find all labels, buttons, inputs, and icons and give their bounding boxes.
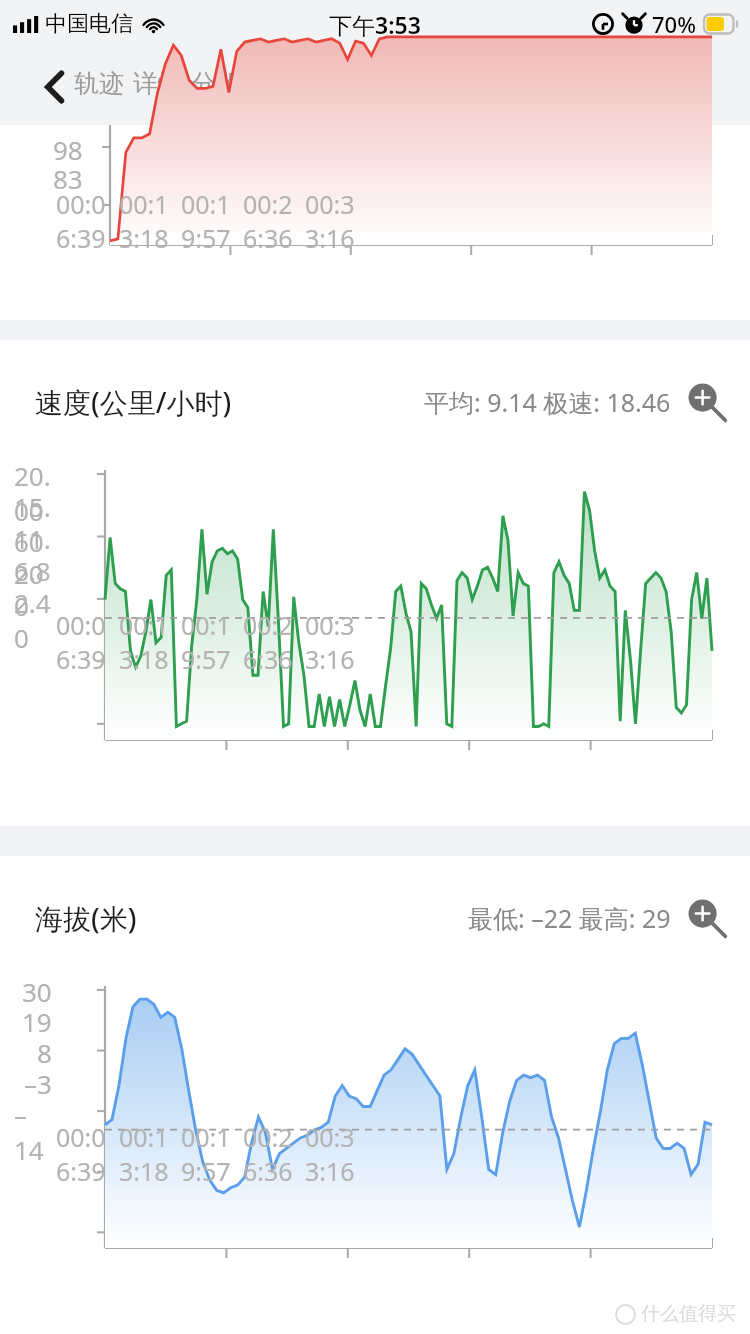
staticText: 19 <box>22 1004 52 1039</box>
button[interactable]: 图表 <box>247 48 303 125</box>
staticText: 83 <box>53 161 83 196</box>
staticText: 图表 <box>250 68 300 99</box>
staticText: 00:19:57 <box>181 608 243 676</box>
staticText: 轨迹 <box>74 68 124 99</box>
button[interactable]: Back <box>30 62 80 112</box>
staticText: 00:13:18 <box>119 187 181 255</box>
staticText: 00:26:36 <box>243 187 305 255</box>
staticText: 30 <box>22 974 52 1009</box>
staticText: 海拔(米) <box>35 899 137 937</box>
staticText: 分段 <box>191 68 241 99</box>
staticText: 平均: 9.14 极速: 18.46 <box>424 385 671 419</box>
staticText: 8 <box>37 1035 52 1070</box>
staticText: 速度(公里/小时) <box>35 383 232 421</box>
button[interactable]: 轨迹 <box>71 48 127 125</box>
staticText: 中国电信 <box>45 10 133 38</box>
staticText: 下午3:53 <box>329 9 421 40</box>
staticText: 00:13:18 <box>119 608 181 676</box>
staticText: 00:06:39 <box>56 187 118 255</box>
staticText: 2.40 <box>14 585 52 655</box>
button[interactable]: 分段 <box>188 48 244 125</box>
staticText: 00:33:16 <box>305 608 367 676</box>
staticText: 00:26:36 <box>243 1120 305 1188</box>
staticText: 20.00 <box>14 458 52 528</box>
staticText: 6.80 <box>14 553 52 623</box>
staticText: 98 <box>53 132 83 167</box>
staticText: 00:13:18 <box>119 1120 181 1188</box>
staticText: 什么值得买 <box>641 1302 736 1326</box>
staticText: 00:33:16 <box>305 187 367 255</box>
button[interactable]: Zoom in chart <box>684 895 730 941</box>
staticText: 最低: –22 最高: 29 <box>468 901 671 935</box>
staticText: 00:33:16 <box>305 1120 367 1188</box>
staticText: 00:06:39 <box>56 1120 118 1188</box>
button[interactable]: 详情 <box>130 48 186 125</box>
staticText: 00:06:39 <box>56 608 118 676</box>
staticText: 70% <box>652 9 696 39</box>
button[interactable]: Zoom in chart <box>684 379 730 425</box>
staticText: 15.60 <box>14 489 52 559</box>
staticText: 11.20 <box>14 521 52 591</box>
button[interactable]: More options <box>680 62 730 112</box>
staticText: 00:19:57 <box>181 187 243 255</box>
staticText: –14 <box>14 1097 52 1167</box>
staticText: 00:26:36 <box>243 608 305 676</box>
staticText: 00:19:57 <box>181 1120 243 1188</box>
staticText: 详情 <box>133 68 183 99</box>
staticText: –3 <box>24 1066 52 1101</box>
